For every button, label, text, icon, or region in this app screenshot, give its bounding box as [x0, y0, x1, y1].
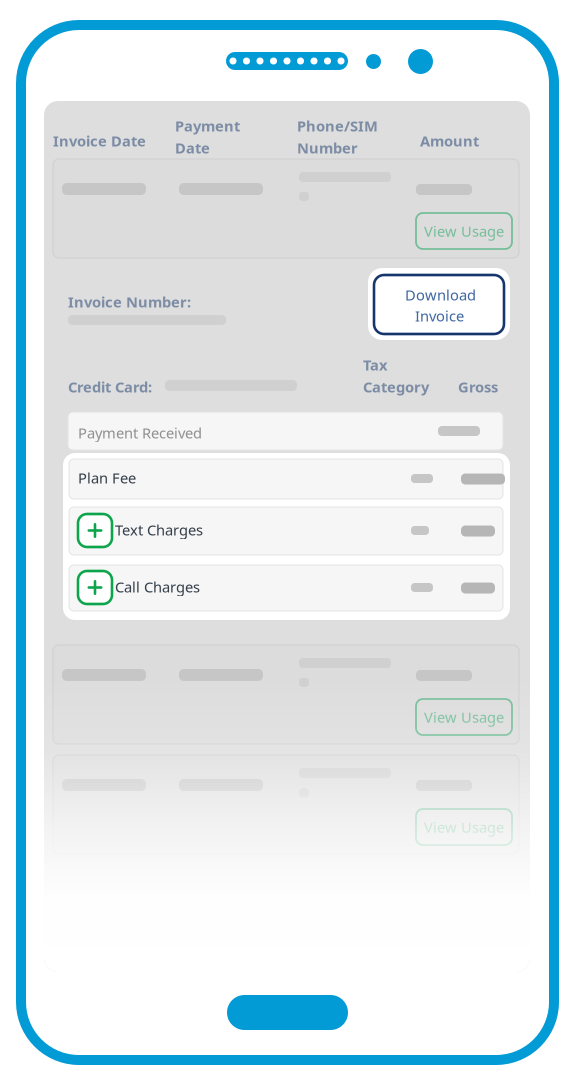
staticText: Tax	[363, 355, 387, 374]
staticText: Category	[363, 377, 429, 396]
staticText: Number	[297, 138, 358, 157]
staticText: Invoice	[415, 306, 464, 325]
button[interactable]: View Usage	[416, 213, 512, 249]
staticText: Amount	[420, 131, 479, 150]
staticText: Gross	[458, 377, 498, 396]
staticText: Invoice Date	[53, 131, 146, 150]
staticText: Plan Fee	[78, 468, 136, 487]
staticText: Text Charges	[115, 520, 203, 539]
button[interactable]: Text Charges	[69, 507, 503, 555]
button[interactable]: Call Charges	[69, 565, 503, 611]
button[interactable]: Show breakdown	[78, 571, 112, 604]
staticText: Date	[175, 138, 210, 157]
staticText: Credit Card:	[68, 377, 152, 396]
button[interactable]: Show breakdown	[78, 514, 112, 547]
button[interactable]: Plan Fee	[69, 459, 503, 499]
button[interactable]: Home	[227, 995, 348, 1030]
staticText: Download	[405, 285, 476, 304]
staticText: Payment Received	[78, 423, 202, 442]
button[interactable]: View Usage	[416, 699, 512, 735]
staticText: Call Charges	[115, 577, 200, 596]
button[interactable]: View Usage	[416, 809, 512, 845]
button[interactable]: Download	[368, 268, 510, 340]
staticText: Phone/SIM	[297, 116, 378, 135]
staticText: View Usage	[424, 707, 504, 727]
staticText: Payment	[175, 116, 240, 135]
staticText: Invoice Number:	[68, 292, 191, 311]
staticText: View Usage	[424, 817, 504, 837]
staticText: View Usage	[424, 221, 504, 241]
